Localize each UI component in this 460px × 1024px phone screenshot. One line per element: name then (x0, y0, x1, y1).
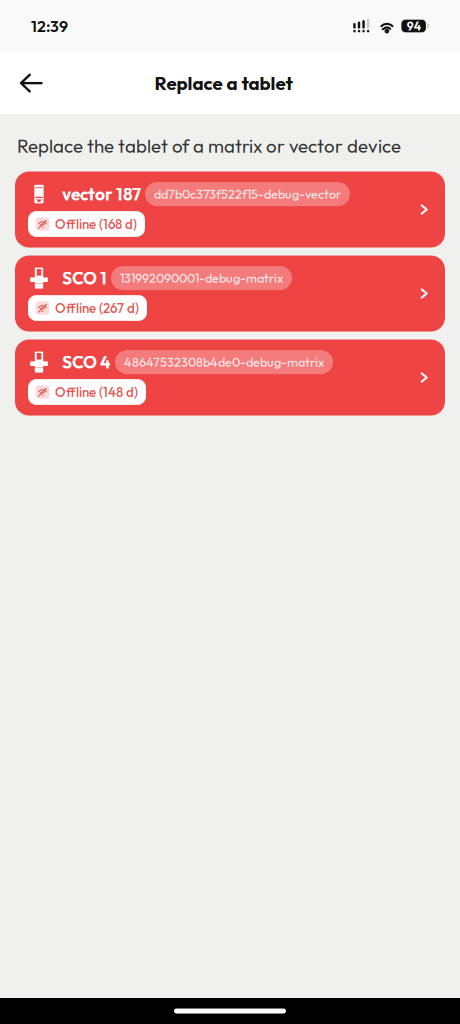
staticText: Offline (168 d) (55, 216, 137, 232)
staticText: 12:39 (31, 16, 68, 36)
staticText: Offline (267 d) (55, 300, 139, 316)
staticText: 131992090001-debug-matrix (120, 270, 283, 286)
button[interactable]: SCO 1 (15, 255, 445, 331)
staticText: SCO 1 (62, 267, 107, 289)
staticText: Replace the tablet of a matrix or vector… (17, 134, 401, 157)
button[interactable]: Back (10, 61, 52, 105)
staticText: vector 187 (62, 183, 141, 205)
staticText: 94 (407, 18, 421, 33)
button[interactable]: SCO 4 (15, 339, 445, 415)
staticText: dd7b0c373f522f15-debug-vector (154, 186, 341, 202)
staticText: SCO 4 (62, 351, 111, 373)
staticText: 48647532308b4de0-debug-matrix (124, 354, 324, 370)
staticText: Offline (148 d) (55, 384, 138, 400)
button[interactable]: vector 187 (15, 171, 445, 247)
staticText: Replace a tablet (154, 71, 292, 95)
